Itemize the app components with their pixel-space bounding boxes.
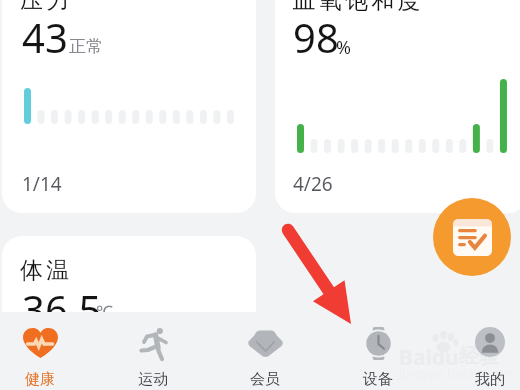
staticText: Jingyan.baidu.com <box>399 364 512 382</box>
staticText: Baidu <box>399 343 459 372</box>
button[interactable]: 运动 <box>97 313 209 390</box>
button[interactable]: 健康记录 <box>433 198 511 276</box>
staticText: % <box>336 35 351 60</box>
button[interactable]: 压力 <box>2 0 256 213</box>
staticText: 压力 <box>20 0 73 15</box>
button[interactable]: 会员 <box>209 313 321 390</box>
staticText: ℃ <box>96 300 113 312</box>
staticText: 健康 <box>25 370 55 389</box>
button[interactable]: 健康 <box>0 313 96 390</box>
staticText: 设备 <box>363 370 393 389</box>
staticText: 36.5 <box>22 282 102 312</box>
staticText: 4/26 <box>293 171 333 197</box>
staticText: 43 <box>22 10 68 64</box>
staticText: 运动 <box>138 370 168 389</box>
staticText: 经验 <box>459 344 499 369</box>
button[interactable]: 设备 <box>322 313 434 390</box>
staticText: 正常 <box>69 36 103 57</box>
button[interactable]: 血氧饱和度 <box>275 0 520 213</box>
staticText: 会员 <box>250 370 280 389</box>
button[interactable]: 体温 <box>2 236 256 312</box>
staticText: 我的 <box>475 370 505 389</box>
staticText: 血氧饱和度 <box>291 0 422 15</box>
staticText: 98 <box>293 10 339 64</box>
button[interactable]: 我的 <box>434 313 520 390</box>
staticText: 体温 <box>20 256 73 285</box>
staticText: 1/14 <box>22 171 62 197</box>
